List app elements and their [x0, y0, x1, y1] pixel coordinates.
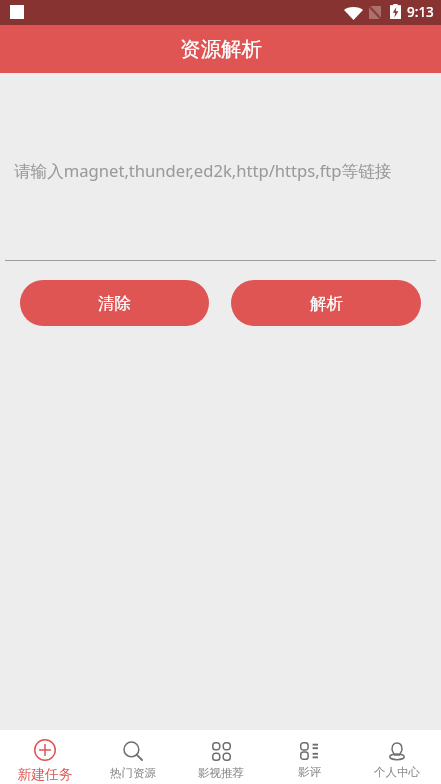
- staticText: 影评: [298, 765, 321, 779]
- staticText: 个人中心: [374, 765, 420, 779]
- button[interactable]: 热门资源: [89, 730, 177, 784]
- staticText: 清除: [98, 293, 131, 314]
- button[interactable]: 影评: [265, 730, 353, 784]
- button[interactable]: 影视推荐: [177, 730, 265, 784]
- staticText: 解析: [310, 293, 343, 314]
- staticText: 热门资源: [110, 766, 156, 780]
- staticText: 影视推荐: [198, 766, 244, 780]
- button[interactable]: 清除: [20, 280, 209, 326]
- button[interactable]: 请输入magnet,thunder,ed2k,http/https,ftp等链接: [5, 141, 436, 261]
- staticText: 请输入magnet,thunder,ed2k,http/https,ftp等链接: [14, 159, 392, 182]
- button[interactable]: 新建任务: [0, 730, 89, 784]
- staticText: 新建任务: [17, 766, 73, 783]
- staticText: 资源解析: [180, 36, 262, 62]
- button[interactable]: 个人中心: [353, 730, 441, 784]
- button[interactable]: 解析: [231, 280, 421, 326]
- staticText: 9:13: [407, 3, 434, 21]
